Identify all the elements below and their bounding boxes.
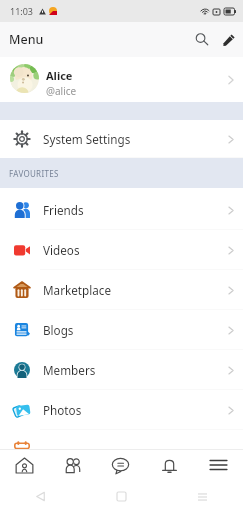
staticText: 11:03	[10, 5, 34, 17]
staticText: Marketplace	[43, 282, 111, 298]
staticText: Alice	[46, 68, 73, 83]
staticText: Members	[43, 362, 96, 378]
staticText: Photos	[43, 402, 82, 418]
button[interactable]: Blogs	[0, 310, 243, 350]
staticText: Menu	[9, 31, 44, 48]
staticText: @alice	[46, 84, 77, 98]
button[interactable]: Notifications	[145, 450, 194, 481]
button[interactable]: Back	[0, 481, 81, 512]
button[interactable]: Friends	[0, 190, 243, 230]
button[interactable]: Photos	[0, 390, 243, 430]
button[interactable]: Home	[81, 481, 162, 512]
button[interactable]: Home	[0, 450, 48, 481]
button[interactable]: System Settings	[0, 120, 243, 158]
button[interactable]: Messages	[96, 450, 145, 481]
button[interactable]: Recents	[162, 481, 243, 512]
button[interactable]: Menu	[194, 450, 243, 481]
button[interactable]: Marketplace	[0, 270, 243, 310]
button[interactable]: Events	[0, 430, 243, 449]
staticText: Blogs	[43, 322, 74, 338]
staticText: Videos	[43, 242, 80, 258]
button[interactable]: Friends	[48, 450, 96, 481]
button[interactable]: Search	[188, 26, 215, 53]
staticText: System Settings	[43, 131, 131, 147]
button[interactable]: Alice	[0, 57, 243, 102]
button[interactable]: Members	[0, 350, 243, 390]
staticText: FAVOURITES	[9, 168, 59, 179]
button[interactable]: Videos	[0, 230, 243, 270]
staticText: Friends	[43, 202, 84, 218]
button[interactable]: Edit	[215, 26, 242, 53]
